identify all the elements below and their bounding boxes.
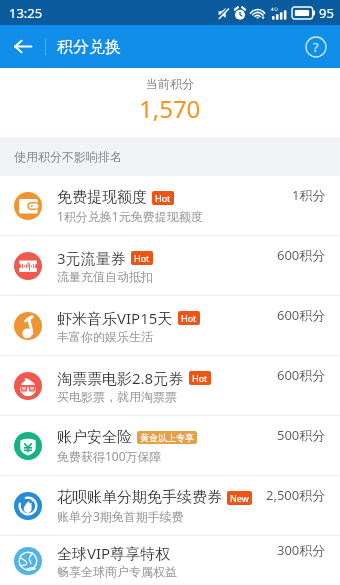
staticText: 虾米音乐VIP15天 bbox=[57, 308, 173, 328]
staticText: 1积分 bbox=[292, 186, 326, 204]
staticText: 600积分 bbox=[277, 246, 326, 264]
staticText: 畅享全球商户专属权益 bbox=[57, 564, 177, 579]
button[interactable]: 全球VIP尊享特权 bbox=[0, 536, 340, 585]
staticText: 1,570 bbox=[139, 92, 201, 125]
button[interactable]: 花呗账单分期免手续费券 bbox=[0, 476, 340, 536]
staticText: 全球VIP尊享特权 bbox=[57, 543, 171, 563]
staticText: 95 bbox=[319, 4, 334, 22]
staticText: 1积分兑换1元免费提现额度 bbox=[57, 208, 203, 224]
staticText: 2,500积分 bbox=[266, 486, 326, 504]
staticText: Hot bbox=[181, 312, 197, 324]
staticText: 账户安全险 bbox=[57, 428, 132, 447]
staticText: 流量充值自动抵扣 bbox=[57, 269, 153, 284]
staticText: Hot bbox=[134, 252, 150, 264]
staticText: 免费提现额度 bbox=[57, 188, 147, 207]
staticText: 买电影票，就用淘票票 bbox=[57, 389, 177, 404]
staticText: 600积分 bbox=[277, 366, 326, 384]
staticText: 丰富你的娱乐生活 bbox=[57, 329, 153, 344]
button[interactable]: 免费提现额度 bbox=[0, 176, 340, 236]
staticText: 13:25 bbox=[9, 4, 43, 22]
staticText: 600积分 bbox=[277, 306, 326, 324]
staticText: New bbox=[230, 492, 249, 504]
staticText: 使用积分不影响排名 bbox=[14, 149, 122, 164]
staticText: Hot bbox=[155, 192, 171, 204]
button[interactable]: 3元流量券 bbox=[0, 236, 340, 296]
staticText: 免费获得100万保障 bbox=[57, 448, 162, 464]
staticText: 500积分 bbox=[277, 426, 326, 444]
staticText: 300积分 bbox=[277, 541, 326, 559]
button[interactable]: Help bbox=[300, 31, 332, 63]
button[interactable]: 淘票票电影2.8元券 bbox=[0, 356, 340, 416]
staticText: 3元流量券 bbox=[57, 248, 126, 268]
staticText: 账单分3期免首期手续费 bbox=[57, 508, 184, 524]
staticText: 淘票票电影2.8元券 bbox=[57, 368, 184, 388]
staticText: 积分兑换 bbox=[57, 37, 121, 57]
staticText: 花呗账单分期免手续费券 bbox=[57, 488, 222, 507]
button[interactable]: Back bbox=[0, 25, 46, 68]
staticText: ? bbox=[313, 38, 319, 56]
button[interactable]: 账户安全险 bbox=[0, 416, 340, 476]
staticText: 黄金以上专享 bbox=[140, 432, 194, 443]
staticText: 当前积分 bbox=[146, 76, 194, 91]
staticText: Hot bbox=[192, 372, 208, 384]
button[interactable]: 虾米音乐VIP15天 bbox=[0, 296, 340, 356]
